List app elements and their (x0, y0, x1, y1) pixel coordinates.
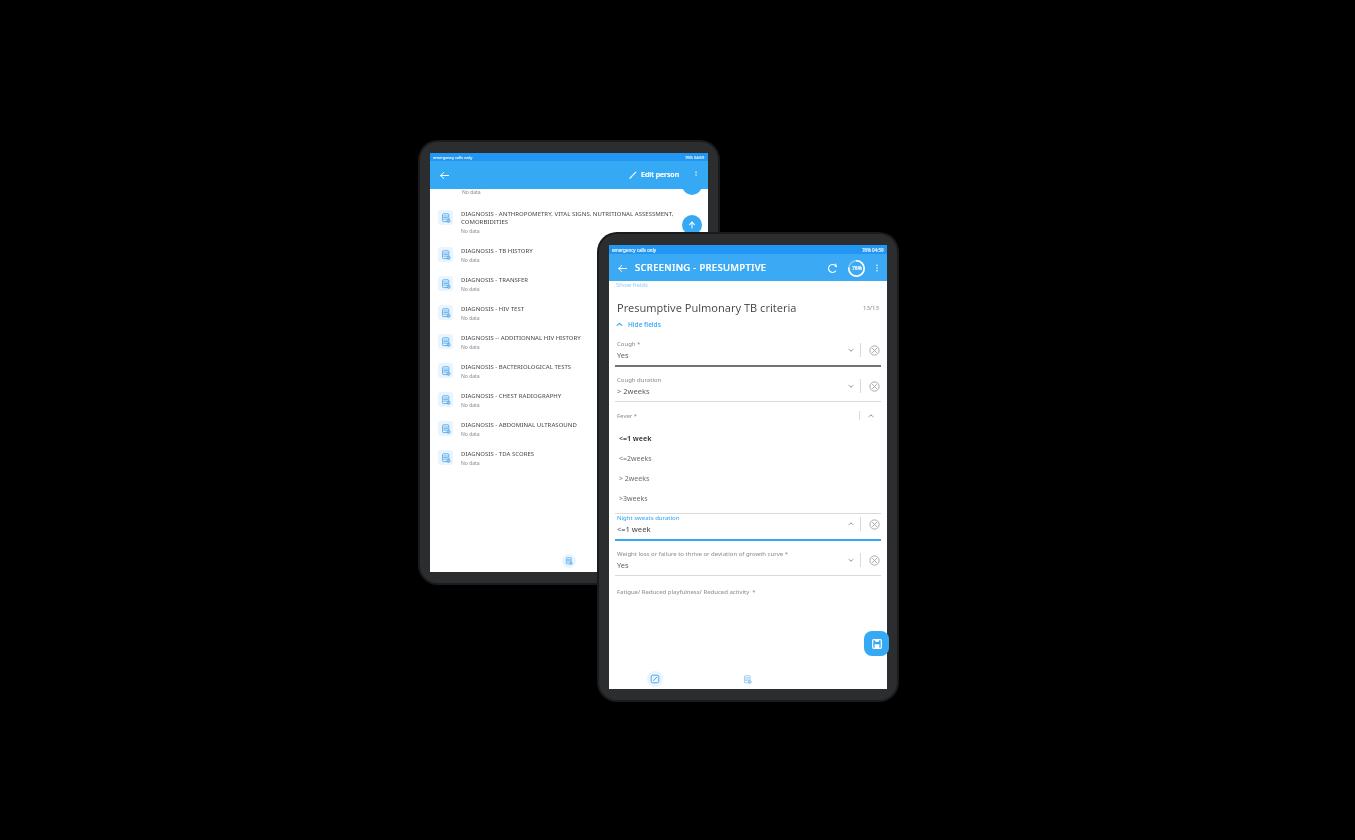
staticText: Cough * (617, 340, 641, 348)
staticText: emergency calls only (612, 247, 657, 253)
staticText: Fatigue/ Reduced playfulness/ Reduced ac… (617, 588, 756, 596)
button[interactable]: Weight loss or failure to thrive or devi… (609, 550, 887, 585)
button[interactable]: DIAGNOSIS - TRANSFER (430, 269, 708, 298)
staticText: <=1 week (619, 434, 652, 444)
button[interactable]: DIAGNOSIS - BACTERIOLOGICAL TESTS (430, 356, 708, 385)
button[interactable]: Cough duration (609, 376, 887, 411)
staticText: Hide fields (628, 320, 661, 329)
staticText: DIAGNOSIS - ABDOMINAL ULTRASOUND (461, 421, 577, 429)
button[interactable]: Back (430, 161, 458, 189)
button[interactable]: Edit form (609, 669, 701, 689)
button[interactable]: More options (867, 258, 887, 278)
button[interactable]: Hide fields (609, 319, 667, 330)
staticText: Presumptive Pulmonary TB criteria (617, 300, 797, 315)
button[interactable]: Clear field (867, 517, 881, 531)
button[interactable]: Clear field (867, 553, 881, 567)
staticText: SCREENING - PRESUMPTIVE (635, 261, 767, 274)
staticText: No data (461, 315, 480, 322)
button[interactable]: DIAGNOSIS - HIV TEST (430, 298, 708, 327)
staticText: Fever * (617, 412, 638, 420)
button[interactable]: <=2weeks (609, 449, 887, 469)
staticText: Show fields (616, 281, 648, 288)
button[interactable]: DIAGNOSIS - ANTHROPOMETRY, VITAL SIGNS, … (430, 203, 708, 240)
staticText: DIAGNOSIS - TDA SCORES (461, 450, 535, 458)
staticText: No data (461, 286, 480, 293)
button[interactable]: Clear field (867, 379, 881, 393)
staticText: <=1 week (617, 524, 651, 534)
button[interactable]: Cough * (609, 340, 887, 376)
staticText: No data (462, 189, 481, 196)
button[interactable]: Back (609, 255, 635, 281)
button[interactable]: Notes (560, 552, 578, 570)
staticText: <=2weeks (619, 454, 652, 464)
staticText: DIAGNOSIS - CHEST RADIOGRAPHY (461, 392, 562, 400)
button[interactable]: Sync (821, 257, 843, 279)
button[interactable]: DIAGNOSIS - TDA SCORES (430, 443, 708, 472)
button[interactable]: Add (682, 175, 702, 195)
staticText: 76% (852, 265, 862, 272)
staticText: Yes (617, 350, 629, 360)
staticText: Night sweats duration (617, 514, 680, 522)
staticText: DIAGNOSIS - BACTERIOLOGICAL TESTS (461, 363, 572, 371)
staticText: Yes (617, 560, 629, 570)
button[interactable]: DIAGNOSIS - CHEST RADIOGRAPHY (430, 385, 708, 414)
staticText: > 2weeks (619, 474, 650, 484)
staticText: DIAGNOSIS - ANTHROPOMETRY, VITAL SIGNS, … (461, 210, 700, 226)
staticText: DIAGNOSIS - TB HISTORY (461, 247, 533, 255)
button[interactable]: Notes (701, 669, 794, 689)
staticText: 13/13 (863, 304, 879, 312)
button[interactable]: More options (684, 163, 708, 187)
staticText: No data (461, 431, 480, 438)
staticText: No data (461, 460, 480, 467)
button[interactable]: > 2weeks (609, 469, 887, 489)
staticText: > 2weeks (617, 386, 650, 396)
staticText: 76% 04:59 (685, 155, 705, 160)
staticText: No data (461, 344, 480, 351)
staticText: DIAGNOSIS - TRANSFER (461, 276, 529, 284)
staticText: No data (461, 257, 480, 264)
button[interactable]: Save (864, 631, 889, 656)
staticText: >3weeks (619, 494, 648, 504)
staticText: Weight loss or failure to thrive or devi… (617, 550, 788, 558)
button[interactable]: DIAGNOSIS -- ADDITIONNAL HIV HISTORY (430, 327, 708, 356)
staticText: No data (461, 402, 480, 409)
staticText: No data (461, 373, 480, 380)
button[interactable]: Add record (682, 215, 702, 235)
button[interactable]: DIAGNOSIS - ABDOMINAL ULTRASOUND (430, 414, 708, 443)
button[interactable]: >3weeks (609, 489, 887, 509)
button[interactable]: Completion 76 percent (845, 257, 867, 279)
staticText: Edit person (641, 170, 680, 180)
button[interactable]: DIAGNOSIS - TB HISTORY (430, 240, 708, 269)
staticText: emergency calls only (433, 155, 473, 160)
staticText: DIAGNOSIS - HIV TEST (461, 305, 525, 313)
staticText: 76% 04:59 (862, 247, 884, 253)
button[interactable]: Clear field (867, 343, 881, 357)
button[interactable]: Edit person (625, 166, 684, 184)
staticText: Cough duration (617, 376, 662, 384)
staticText: DIAGNOSIS -- ADDITIONNAL HIV HISTORY (461, 334, 581, 342)
staticText: No data (461, 228, 480, 235)
button[interactable]: <=1 week (609, 429, 887, 449)
button[interactable]: Night sweats duration (609, 514, 887, 550)
